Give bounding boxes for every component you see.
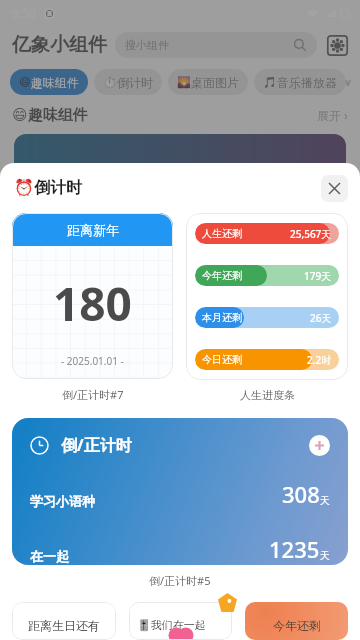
staticText: 今年还剩 bbox=[202, 269, 242, 282]
button[interactable]: 距离生日还有 bbox=[12, 602, 116, 640]
button[interactable]: 距离新年 bbox=[12, 213, 173, 379]
staticText: 天 bbox=[320, 549, 330, 562]
staticText: 在一起 bbox=[30, 548, 69, 564]
button[interactable]: 😄 bbox=[10, 69, 88, 95]
button[interactable]: ⏱ bbox=[94, 69, 162, 95]
button[interactable]: Close bbox=[321, 175, 348, 202]
staticText: 308 bbox=[282, 479, 320, 509]
button[interactable]: 今年还剩 bbox=[245, 602, 348, 640]
staticText: 180 bbox=[53, 272, 132, 335]
staticText: 1235 bbox=[269, 534, 320, 564]
button[interactable]: 搜小组件 bbox=[115, 32, 317, 58]
button[interactable]: 人生还剩 bbox=[186, 213, 348, 380]
button[interactable]: 🎚我们在一起 bbox=[129, 602, 232, 640]
staticText: 趣味组件 bbox=[31, 75, 79, 90]
staticText: ⏱ bbox=[103, 76, 117, 89]
staticText: 搜小组件 bbox=[125, 38, 169, 52]
staticText: 26天 bbox=[310, 311, 332, 325]
staticText: 今日还剩 bbox=[202, 353, 242, 366]
button[interactable]: 倒/正计时 bbox=[12, 418, 348, 565]
staticText: 倒/正计时#7 bbox=[62, 387, 124, 402]
staticText: 人生进度条 bbox=[240, 388, 295, 402]
staticText: 亿象小组件 bbox=[12, 33, 107, 57]
staticText: 🎵 bbox=[263, 76, 277, 89]
staticText: 本月还剩 bbox=[202, 311, 242, 324]
staticText: 倒/正计时 bbox=[61, 434, 132, 456]
staticText: 展开 › bbox=[317, 107, 348, 123]
staticText: 🌄 bbox=[177, 76, 191, 89]
staticText: 天 bbox=[320, 494, 330, 507]
staticText: 音乐播放器 bbox=[277, 75, 337, 90]
staticText: 距离生日还有 bbox=[28, 618, 100, 633]
staticText: 😄趣味组件 bbox=[12, 106, 88, 125]
staticText: 距离新年 bbox=[67, 222, 119, 238]
staticText: 179天 bbox=[304, 269, 332, 283]
button[interactable]: 🎵 bbox=[254, 69, 346, 95]
staticText: 倒计时 bbox=[117, 75, 153, 90]
staticText: 今年还剩 bbox=[273, 618, 321, 633]
staticText: 人生还剩 bbox=[202, 227, 242, 240]
button[interactable]: Expand categories bbox=[346, 70, 350, 94]
staticText: 25,567天 bbox=[290, 227, 332, 241]
staticText: 😄 bbox=[19, 76, 31, 89]
staticText: - 2025.01.01 - bbox=[61, 354, 124, 368]
staticText: 桌面图片 bbox=[191, 75, 239, 90]
button[interactable]: 🌄 bbox=[168, 69, 248, 95]
staticText: ⏰倒计时 bbox=[14, 178, 82, 198]
staticText: 2.2时 bbox=[307, 353, 332, 367]
staticText: 🎚我们在一起 bbox=[137, 618, 206, 632]
button[interactable]: Settings bbox=[327, 35, 348, 56]
staticText: 学习小语种 bbox=[30, 493, 95, 509]
staticText: 倒/正计时#5 bbox=[149, 573, 211, 588]
button[interactable]: Add timer bbox=[309, 435, 330, 456]
